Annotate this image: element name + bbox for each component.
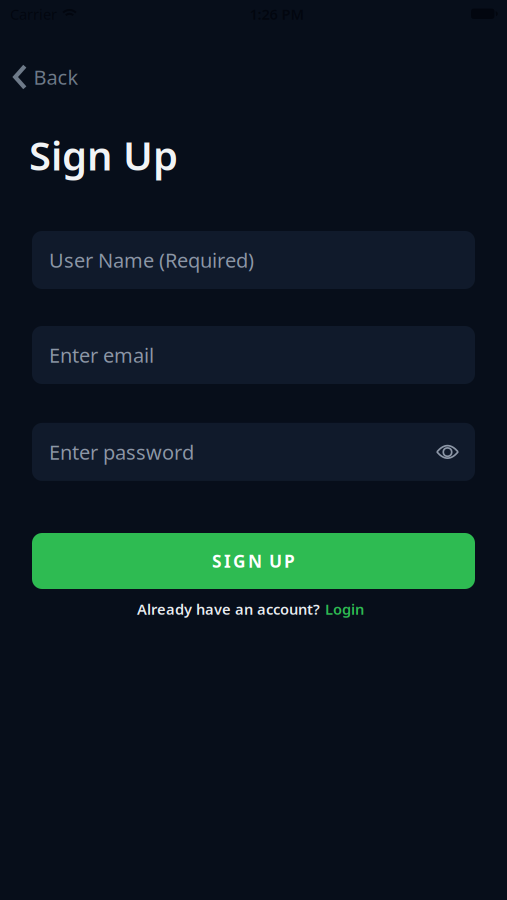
button[interactable]: Enter password xyxy=(32,423,475,481)
staticText: 1:26 PM xyxy=(249,4,304,24)
staticText: Carrier xyxy=(10,4,57,24)
staticText: Login xyxy=(325,599,364,619)
staticText: Enter password xyxy=(49,439,194,465)
button[interactable]: Enter email xyxy=(32,326,475,384)
staticText: Enter email xyxy=(49,342,154,368)
button[interactable]: Back xyxy=(13,64,78,90)
staticText: S I G N U P xyxy=(212,549,295,572)
button[interactable]: Login xyxy=(325,599,364,619)
staticText: Sign Up xyxy=(29,128,178,181)
staticText: Already have an account? xyxy=(137,599,320,619)
button[interactable]: User Name (Required) xyxy=(32,231,475,289)
button[interactable]: S I G N U P xyxy=(32,533,475,589)
staticText: User Name (Required) xyxy=(49,247,254,273)
staticText: Back xyxy=(33,64,78,90)
